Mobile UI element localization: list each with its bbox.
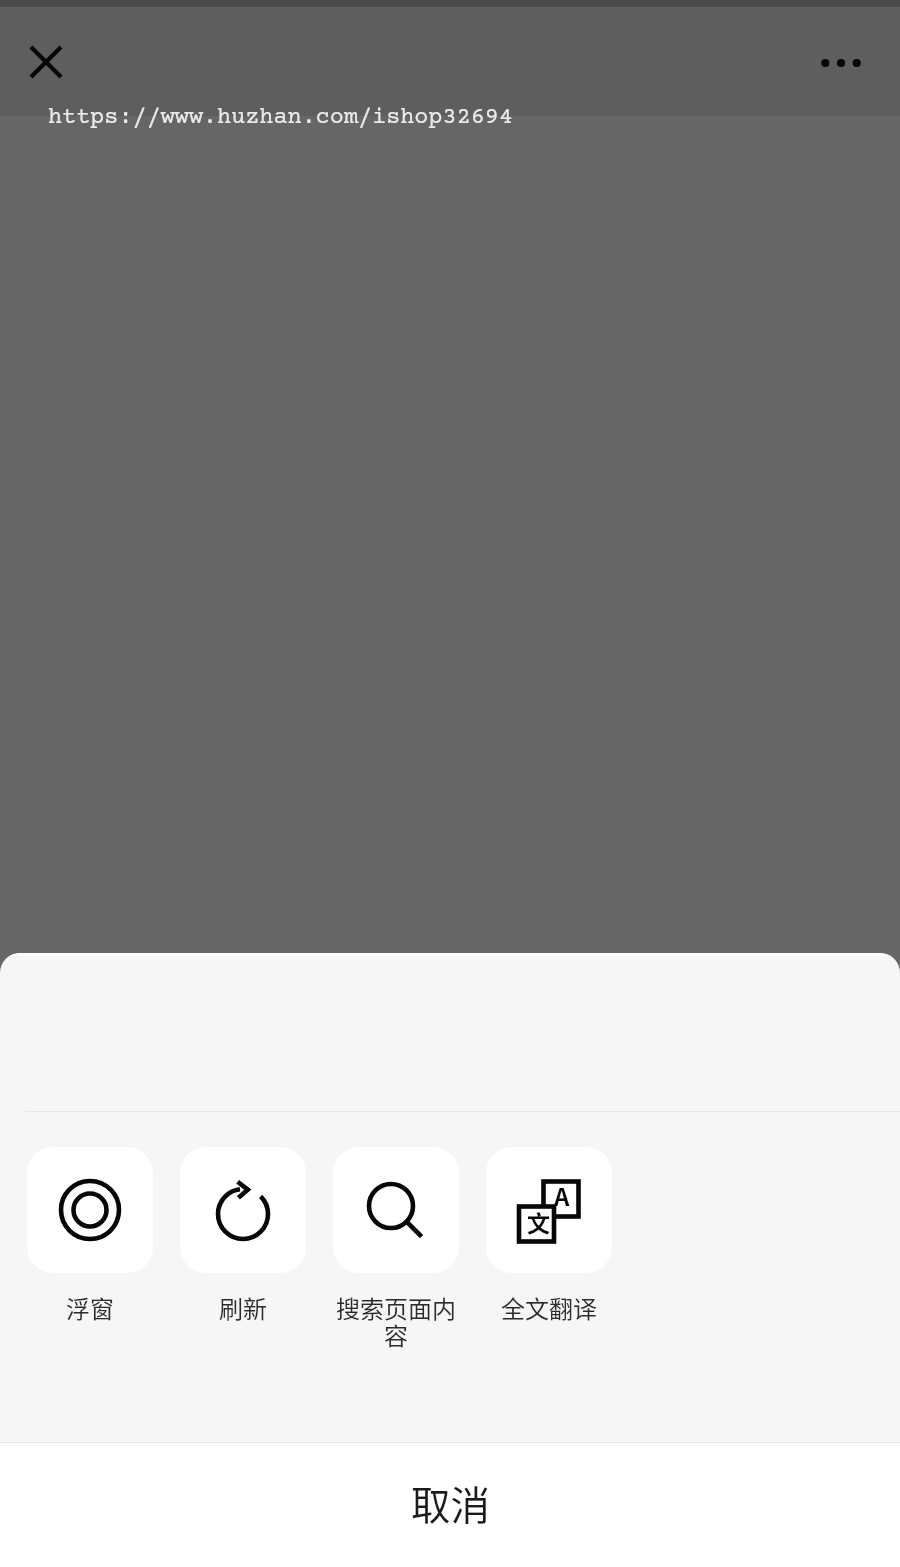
staticText: https://www.huzhan.com/ishop32694 xyxy=(48,105,513,131)
staticText: 全文翻译 xyxy=(486,1290,612,1325)
button[interactable]: 取消 xyxy=(0,1443,900,1567)
button[interactable]: 浮窗 xyxy=(27,1147,153,1325)
staticText: A xyxy=(554,1178,570,1213)
staticText: 浮窗 xyxy=(27,1290,153,1325)
staticText: 文 xyxy=(527,1205,550,1238)
button[interactable]: Close xyxy=(16,32,76,92)
button[interactable]: More options xyxy=(811,33,871,93)
button[interactable]: 搜索页面内容 xyxy=(333,1147,459,1352)
staticText: 刷新 xyxy=(180,1290,306,1325)
staticText: 搜索页面内容 xyxy=(333,1290,459,1352)
button[interactable]: 刷新 xyxy=(180,1147,306,1325)
staticText: 取消 xyxy=(411,1474,490,1531)
button[interactable]: A xyxy=(486,1147,612,1325)
